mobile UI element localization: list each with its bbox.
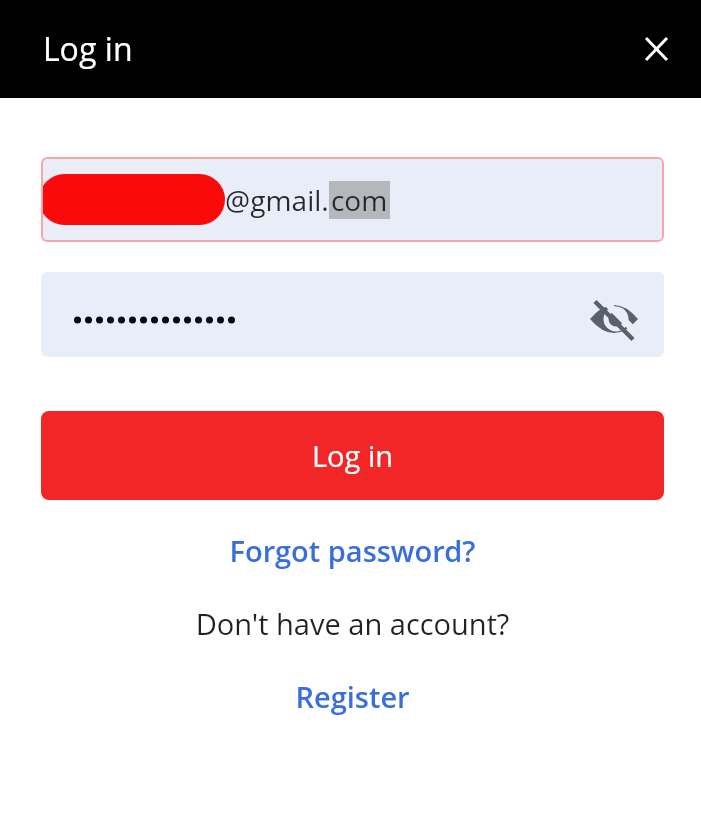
staticText: @gmail. — [225, 181, 329, 219]
button[interactable]: Register — [41, 677, 664, 716]
staticText: Log in — [312, 436, 394, 475]
button[interactable] — [592, 293, 636, 337]
button[interactable] — [634, 27, 678, 71]
staticText: Don't have an account? — [41, 604, 664, 643]
button[interactable]: Forgot password? — [41, 531, 664, 570]
button[interactable] — [41, 272, 664, 357]
staticText: Log in — [43, 27, 133, 71]
button[interactable]: Log in — [41, 411, 664, 500]
staticText: com — [331, 181, 388, 219]
button[interactable]: @gmail. — [41, 157, 664, 242]
